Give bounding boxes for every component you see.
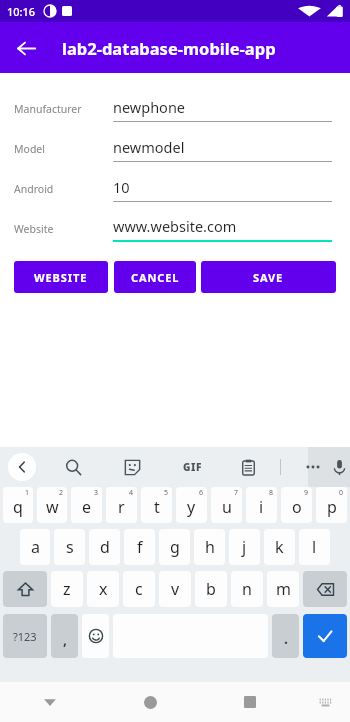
button[interactable]: k: [264, 529, 295, 565]
button[interactable]: i: [246, 487, 277, 523]
staticText: m: [276, 578, 291, 600]
staticText: y: [187, 496, 196, 518]
button[interactable]: n: [231, 571, 263, 607]
button[interactable]: v: [159, 571, 191, 607]
staticText: 10: [113, 177, 130, 197]
button[interactable]: Voice input: [328, 447, 350, 487]
button[interactable]: Android: [0, 169, 350, 209]
staticText: 9: [304, 488, 309, 498]
button[interactable]: a: [20, 529, 50, 565]
staticText: i: [259, 496, 264, 518]
staticText: 8: [269, 488, 274, 498]
button[interactable]: s: [54, 529, 85, 565]
button[interactable]: SAVE: [201, 261, 336, 293]
button[interactable]: ?123: [3, 614, 47, 658]
staticText: 10:16: [7, 4, 36, 19]
button[interactable]: e: [71, 487, 102, 523]
button[interactable]: .: [272, 614, 299, 658]
staticText: 0: [339, 488, 344, 498]
button[interactable]: r: [106, 487, 137, 523]
staticText: e: [82, 496, 92, 518]
staticText: 3: [94, 488, 99, 498]
button[interactable]: Manufacturer: [0, 89, 350, 129]
button[interactable]: x: [87, 571, 119, 607]
button[interactable]: g: [159, 529, 190, 565]
staticText: o: [292, 496, 302, 518]
staticText: u: [222, 496, 232, 518]
staticText: j: [242, 536, 247, 558]
staticText: r: [118, 496, 125, 518]
staticText: Manufacturer: [14, 102, 113, 116]
staticText: q: [13, 496, 23, 518]
button[interactable]: Back: [0, 682, 100, 722]
staticText: g: [170, 536, 180, 558]
staticText: 4: [129, 488, 134, 498]
button[interactable]: t: [141, 487, 172, 523]
staticText: www.website.com: [113, 216, 237, 236]
staticText: z: [63, 578, 71, 600]
button[interactable]: f: [124, 529, 155, 565]
staticText: l: [312, 536, 317, 558]
button[interactable]: Recent apps: [200, 682, 300, 722]
button[interactable]: p: [316, 487, 347, 523]
button[interactable]: c: [123, 571, 155, 607]
staticText: Android: [14, 182, 113, 196]
staticText: 1: [25, 488, 30, 498]
staticText: c: [135, 578, 143, 600]
staticText: b: [206, 578, 216, 600]
button[interactable]: Stickers: [117, 452, 147, 482]
staticText: newphone: [113, 97, 186, 117]
staticText: v: [171, 578, 180, 600]
button[interactable]: ,: [51, 614, 78, 658]
button[interactable]: GIF: [177, 452, 207, 482]
staticText: s: [66, 536, 74, 558]
staticText: ?123: [13, 629, 37, 644]
button[interactable]: j: [229, 529, 260, 565]
button[interactable]: Back: [6, 28, 46, 68]
button[interactable]: d: [89, 529, 120, 565]
staticText: w: [46, 496, 59, 518]
staticText: 6: [199, 488, 204, 498]
staticText: WEBSITE: [34, 270, 88, 285]
button[interactable]: Website: [0, 209, 350, 249]
staticText: k: [275, 536, 284, 558]
staticText: x: [99, 578, 108, 600]
button[interactable]: Clipboard: [233, 452, 263, 482]
button[interactable]: h: [194, 529, 225, 565]
button[interactable]: b: [195, 571, 227, 607]
staticText: .: [284, 629, 288, 648]
button[interactable]: u: [211, 487, 242, 523]
button[interactable]: m: [267, 571, 299, 607]
staticText: CANCEL: [131, 270, 180, 285]
button[interactable]: y: [176, 487, 207, 523]
staticText: h: [205, 536, 215, 558]
button[interactable]: Search: [58, 452, 88, 482]
staticText: Model: [14, 142, 113, 156]
button[interactable]: CANCEL: [114, 261, 196, 293]
button[interactable]: o: [281, 487, 312, 523]
staticText: f: [137, 536, 143, 558]
button[interactable]: Enter: [303, 614, 347, 658]
button[interactable]: Emoji: [82, 614, 109, 658]
staticText: SAVE: [253, 270, 284, 285]
button[interactable]: w: [37, 487, 67, 523]
staticText: Website: [14, 222, 113, 236]
button[interactable]: l: [299, 529, 330, 565]
button[interactable]: Model: [0, 129, 350, 169]
button[interactable]: WEBSITE: [14, 261, 108, 293]
staticText: p: [327, 496, 337, 518]
button[interactable]: Change keyboard: [300, 682, 350, 722]
button[interactable]: q: [3, 487, 33, 523]
staticText: t: [154, 496, 160, 518]
staticText: d: [100, 536, 110, 558]
button[interactable]: z: [51, 571, 83, 607]
staticText: newmodel: [113, 137, 185, 157]
staticText: a: [31, 536, 40, 558]
button[interactable]: Home: [100, 682, 200, 722]
button[interactable]: Shift: [3, 571, 47, 607]
staticText: n: [242, 578, 252, 600]
button[interactable]: Backspace: [303, 571, 347, 607]
button[interactable]: More options: [298, 452, 328, 482]
button[interactable]: Back: [8, 453, 36, 481]
